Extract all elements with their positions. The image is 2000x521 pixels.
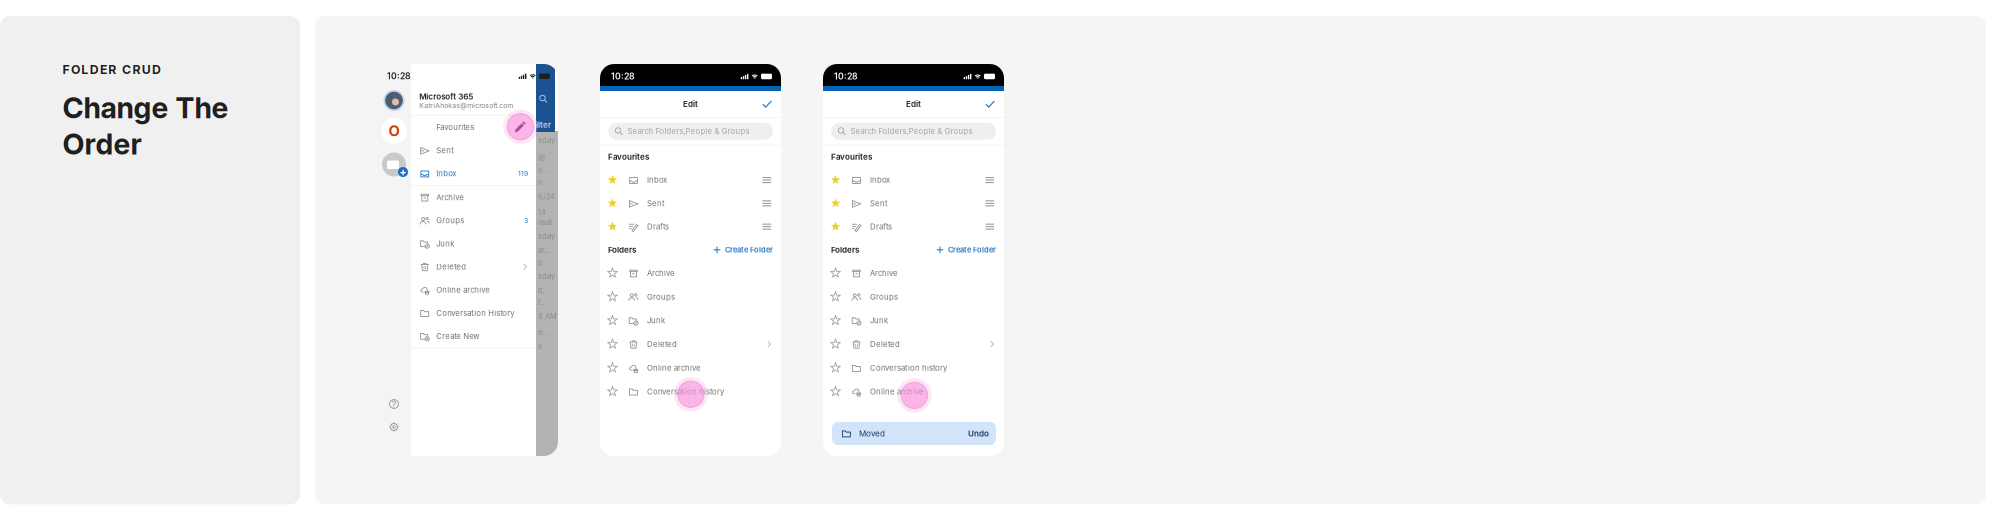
staticText: Conversation history: [870, 363, 947, 373]
staticText: Inbox: [436, 169, 456, 178]
staticText: Search Folders,People & Groups: [850, 126, 972, 136]
button[interactable]: Archive: [411, 186, 536, 209]
staticText: Inbox: [647, 175, 667, 185]
staticText: @: [538, 152, 545, 161]
button[interactable]: Archive: [823, 261, 1004, 285]
button[interactable]: Groups: [411, 209, 536, 232]
staticText: Conversation history: [647, 387, 724, 396]
staticText: Archive: [647, 268, 675, 278]
button[interactable]: Online archive: [823, 380, 1004, 403]
staticText: Junk: [870, 316, 888, 325]
staticText: Sent: [870, 199, 888, 208]
staticText: Deleted: [870, 340, 900, 349]
staticText: k: [538, 342, 542, 351]
staticText: Undo: [968, 429, 989, 438]
button[interactable]: Junk: [823, 309, 1004, 332]
staticText: sday: [538, 272, 555, 281]
staticText: 3: [524, 216, 528, 225]
staticText: Junk: [647, 316, 665, 325]
staticText: ar…: [538, 246, 550, 255]
staticText: sday: [538, 136, 555, 145]
button[interactable]: Done: [756, 94, 778, 114]
staticText: e…: [538, 328, 548, 337]
staticText: osal: [538, 218, 552, 227]
staticText: Archive: [870, 268, 898, 278]
staticText: Folders: [831, 245, 859, 255]
staticText: Edit: [906, 99, 921, 109]
staticText: Archive: [436, 193, 464, 202]
button[interactable]: Archive: [600, 261, 781, 285]
button[interactable]: Create Folder: [936, 245, 996, 254]
staticText: ?: [391, 398, 396, 410]
staticText: t…: [538, 298, 546, 307]
button[interactable]: Groups: [600, 285, 781, 309]
staticText: Moved: [859, 429, 885, 438]
button[interactable]: Deleted: [411, 255, 536, 278]
button[interactable]: Conversation history: [823, 356, 1004, 380]
staticText: Online archive: [436, 285, 490, 295]
staticText: 6/24: [538, 192, 555, 201]
staticText: Folders: [608, 245, 636, 255]
staticText: Groups: [870, 292, 898, 302]
button[interactable]: Done: [979, 94, 1001, 114]
staticText: Online archive: [870, 387, 924, 396]
staticText: Search Folders,People & Groups: [627, 126, 749, 136]
staticText: Microsoft 365: [419, 92, 473, 101]
button[interactable]: Online archive: [411, 278, 536, 301]
staticText: Favourites: [831, 152, 872, 162]
staticText: 14: [538, 208, 546, 217]
staticText: n: [538, 178, 542, 187]
button[interactable]: Drafts: [823, 215, 1004, 238]
staticText: 10:28: [611, 71, 635, 81]
staticText: Groups: [436, 216, 464, 225]
staticText: 119: [518, 169, 528, 178]
button[interactable]: Inbox: [411, 162, 536, 185]
staticText: Deleted: [647, 340, 677, 349]
staticText: Sent: [647, 199, 665, 208]
staticText: +: [399, 165, 406, 178]
button[interactable]: Drafts: [600, 215, 781, 238]
staticText: d,: [538, 286, 545, 295]
staticText: Favourites: [436, 122, 474, 132]
button[interactable]: Groups: [823, 285, 1004, 309]
button[interactable]: Favourites: [411, 116, 536, 139]
button[interactable]: Online archive: [600, 356, 781, 380]
button[interactable]: Help: [383, 393, 405, 415]
staticText: Inbox: [870, 175, 890, 185]
staticText: KatriAhokas@microsoft.com: [419, 101, 513, 110]
staticText: 10:28: [387, 71, 411, 81]
staticText: ilter: [536, 120, 551, 130]
staticText: Create Folder: [948, 245, 996, 254]
staticText: 10:28: [834, 71, 858, 81]
button[interactable]: Moved: [832, 422, 996, 445]
button[interactable]: Deleted: [823, 332, 1004, 356]
button[interactable]: Sent: [823, 192, 1004, 215]
button[interactable]: Sent: [600, 192, 781, 215]
staticText: FOLDER CRUD: [63, 62, 161, 77]
staticText: Deleted: [436, 262, 466, 271]
button[interactable]: Settings: [383, 416, 405, 438]
staticText: Create Folder: [725, 245, 773, 254]
button[interactable]: Create Folder: [713, 245, 773, 254]
staticText: Create New: [436, 331, 479, 341]
staticText: Online archive: [647, 363, 701, 373]
staticText: Drafts: [870, 222, 892, 231]
staticText: O: [388, 122, 399, 140]
button[interactable]: Junk: [411, 232, 536, 255]
button[interactable]: Sent: [411, 139, 536, 162]
button[interactable]: Deleted: [600, 332, 781, 356]
staticText: o…: [538, 166, 548, 175]
staticText: Edit: [683, 99, 698, 109]
staticText: sday: [538, 232, 555, 241]
staticText: Sent: [436, 146, 454, 155]
staticText: Drafts: [647, 222, 669, 231]
button[interactable]: Inbox: [823, 168, 1004, 192]
staticText: 5 AM: [538, 312, 557, 321]
button[interactable]: Junk: [600, 309, 781, 332]
staticText: Junk: [436, 239, 454, 248]
button[interactable]: Inbox: [600, 168, 781, 192]
staticText: Favourites: [608, 152, 649, 162]
button[interactable]: Create New: [411, 325, 536, 348]
button[interactable]: Conversation history: [600, 380, 781, 403]
button[interactable]: Conversation History: [411, 301, 536, 325]
